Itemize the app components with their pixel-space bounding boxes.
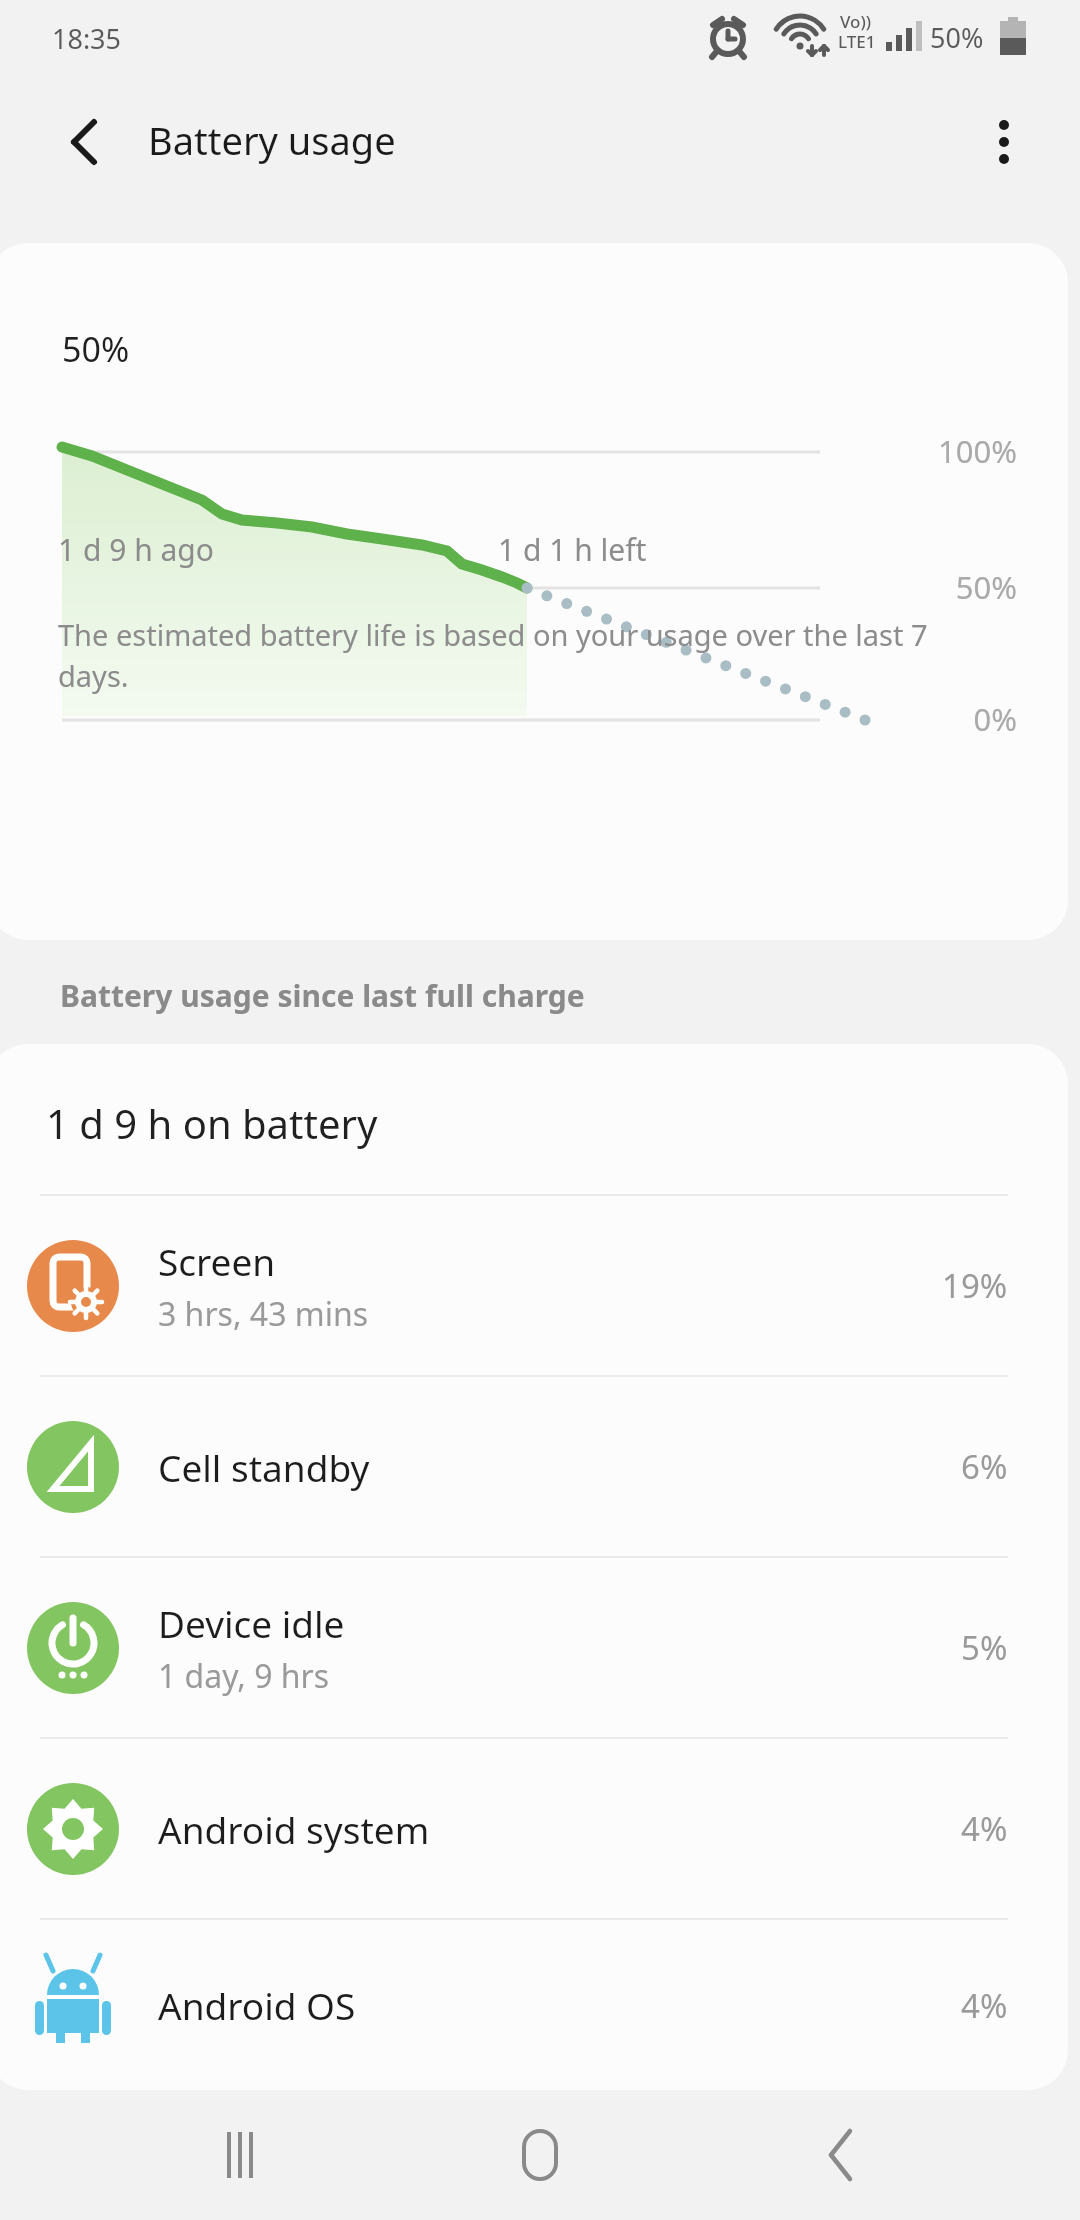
button[interactable]: Screen [0,1196,1068,1375]
staticText: 0% [0,698,1017,740]
staticText: 19% [942,1263,1008,1308]
staticText: Android system [158,1804,430,1854]
staticText: Battery usage [148,114,396,166]
staticText: The estimated battery life is based on y… [58,615,968,696]
button[interactable]: Device idle [0,1558,1068,1737]
staticText: Android OS [158,1980,356,2030]
button[interactable]: Android OS [0,1920,1068,2090]
button[interactable]: Recent apps [180,2095,300,2215]
staticText: 100% [0,430,1017,472]
button[interactable]: More options [960,98,1048,186]
staticText: 1 d 1 h left [498,529,647,570]
staticText: 50% [0,566,1017,608]
staticText: 18:35 [52,20,122,57]
button[interactable]: Android system [0,1739,1068,1918]
staticText: Screen [158,1236,276,1286]
staticText: 3 hrs, 43 mins [158,1292,369,1336]
staticText: 4% [961,1983,1008,2028]
staticText: Battery usage since last full charge [60,975,585,1016]
staticText: 50% [62,326,130,372]
button[interactable]: Back [40,98,128,186]
staticText: 50% [930,19,984,56]
staticText: LTE1 [838,30,876,53]
staticText: Device idle [158,1598,345,1648]
button[interactable]: Cell standby [0,1377,1068,1556]
staticText: 1 d 9 h on battery [46,1096,378,1150]
staticText: 4% [961,1806,1008,1851]
button[interactable]: Home [480,2095,600,2215]
button[interactable]: Back [780,2095,900,2215]
staticText: Vo)) [840,10,872,33]
staticText: 1 d 9 h ago [58,529,214,570]
staticText: 6% [961,1444,1008,1489]
staticText: Cell standby [158,1442,370,1492]
staticText: 1 day, 9 hrs [158,1654,330,1698]
staticText: 5% [961,1625,1008,1670]
